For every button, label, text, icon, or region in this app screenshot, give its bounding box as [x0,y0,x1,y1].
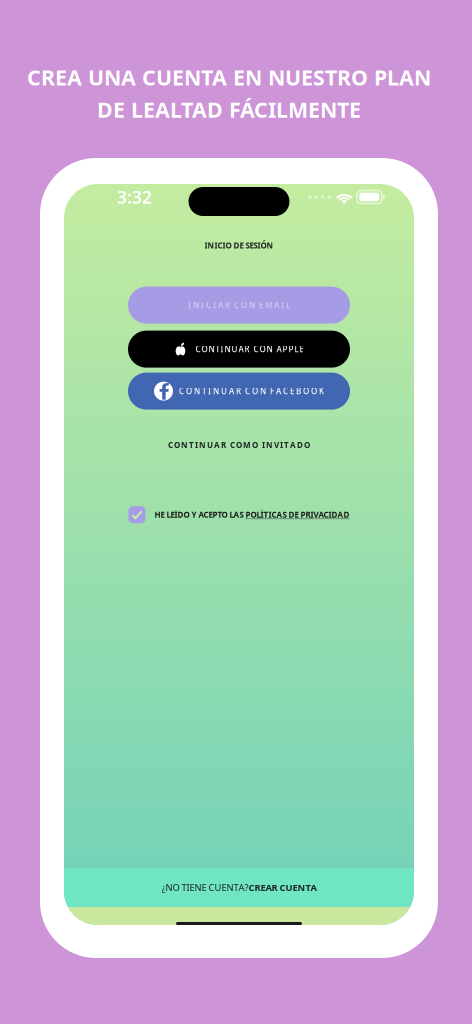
staticText: 3:32 [117,185,152,208]
staticText: DE LEALTAD FÁCILMENTE [97,95,361,124]
staticText: ¿NO TIENE CUENTA? [161,881,248,894]
staticText: INICIO DE SESIÓN [204,240,273,251]
staticText: CREAR CUENTA [248,881,316,894]
button[interactable]: ¿NO TIENE CUENTA? [64,868,414,907]
button[interactable]: HE LEÍDO Y ACEPTO LAS POLÍTICAS DE PRIVA… [128,506,349,523]
staticText: CREA UNA CUENTA EN NUESTRO PLAN [27,63,431,91]
staticText: C O N T I N U A R C O M O I N V I T A D … [168,440,310,450]
staticText: I N I C I A R C O N E M A I L [188,300,290,310]
staticText: C O N T I N U A R C O N F A C E B O O K [179,386,324,396]
button[interactable]: I N I C I A R C O N E M A I L [128,287,350,324]
staticText: HE LEÍDO Y ACEPTO LAS POLÍTICAS DE PRIVA… [154,509,349,520]
button[interactable]: C O N T I N U A R C O N F A C E B O O K [128,373,350,410]
button[interactable]: C O N T I N U A R C O N A P P L E [128,331,350,368]
button[interactable]: C O N T I N U A R C O M O I N V I T A D … [158,436,320,454]
staticText: C O N T I N U A R C O N A P P L E [195,344,303,354]
